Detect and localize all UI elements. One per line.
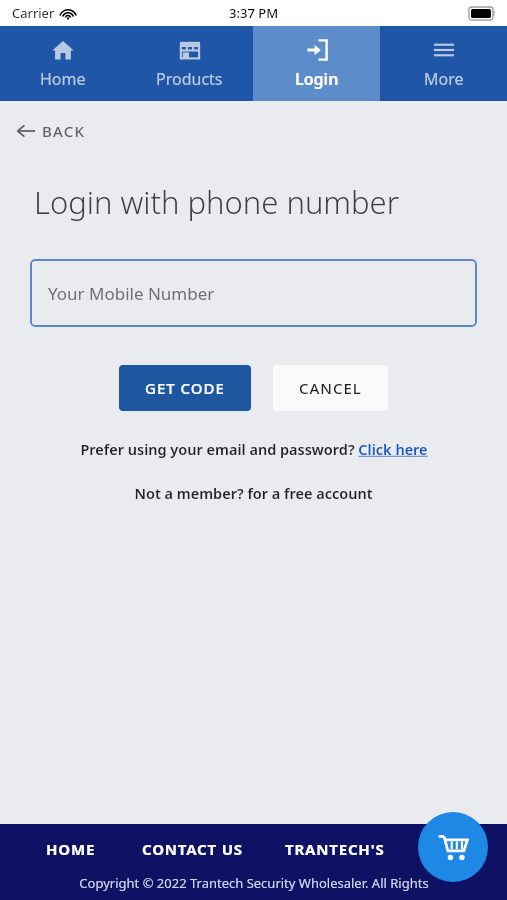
button[interactable]: HOME xyxy=(46,833,96,865)
staticText: Your Mobile Number xyxy=(48,282,215,305)
staticText: Not a member? for a free account xyxy=(134,483,373,503)
staticText: 3:37 PM xyxy=(229,4,279,22)
button[interactable]: Your Mobile Number xyxy=(30,259,477,327)
staticText: TRANTECH'S xyxy=(285,839,385,859)
staticText: CONTACT US xyxy=(142,839,243,859)
staticText: Copyright © 2022 Trantech Security Whole… xyxy=(79,874,429,892)
button[interactable]: TRANTECH'S xyxy=(285,833,385,865)
button[interactable]: Prefer using your email and password? Cl… xyxy=(0,439,507,459)
staticText: Prefer using your email and password? Cl… xyxy=(80,439,428,459)
button[interactable]: BACK xyxy=(12,117,90,145)
other: Products xyxy=(178,38,202,62)
button[interactable]: More xyxy=(380,26,507,101)
button[interactable]: GET CODE xyxy=(119,365,251,411)
staticText: Carrier xyxy=(12,4,55,22)
staticText: More xyxy=(424,68,464,90)
button[interactable]: Login xyxy=(253,26,380,101)
staticText: BACK xyxy=(42,121,86,141)
other: More xyxy=(432,38,456,62)
staticText: GET CODE xyxy=(145,378,225,398)
button[interactable]: CONTACT US xyxy=(142,833,243,865)
other: Login xyxy=(305,38,329,62)
button[interactable]: Home xyxy=(0,26,126,101)
staticText: CANCEL xyxy=(299,378,362,398)
staticText: Products xyxy=(156,68,223,90)
button[interactable]: Cart xyxy=(418,812,488,882)
staticText: Login with phone number xyxy=(34,181,473,223)
staticText: HOME xyxy=(46,839,96,859)
button[interactable]: Products xyxy=(126,26,253,101)
button[interactable]: CANCEL xyxy=(273,365,388,411)
other: Home xyxy=(51,38,75,62)
staticText: Login xyxy=(295,68,339,90)
button[interactable]: Not a member? for a free account xyxy=(0,483,507,503)
staticText: Home xyxy=(40,68,86,90)
